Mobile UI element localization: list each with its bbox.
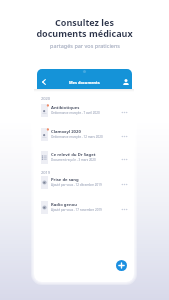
button[interactable]: Ce relevé du Dr Saget [34, 146, 134, 167]
button[interactable]: More options [120, 108, 129, 117]
button[interactable]: Back [39, 77, 49, 87]
staticText: Ordonnance envoyée - 12 mars 2020 [51, 135, 103, 139]
staticText: Clamoxyl 2020 [51, 129, 81, 135]
button[interactable]: Prise de sang [34, 171, 134, 192]
button[interactable]: More options [120, 205, 129, 214]
staticText: 2019 [41, 170, 51, 175]
staticText: Document reçu le - 3 mars 2020 [51, 158, 96, 162]
button[interactable]: Account [121, 77, 131, 87]
button[interactable]: Clamoxyl 2020 [34, 123, 134, 144]
staticText: Ordonnance envoyée - 7 avril 2020 [51, 111, 100, 115]
button[interactable]: Radio genou [34, 196, 134, 217]
staticText: 2020 [41, 96, 51, 101]
staticText: partagés par vos praticiens [50, 42, 120, 49]
button[interactable]: Add document [116, 260, 127, 271]
staticText: Mes documents [69, 80, 100, 85]
staticText: Ajouté par vous - 17 novembre 2019 [51, 208, 102, 212]
staticText: Ce relevé du Dr Saget [51, 152, 96, 158]
staticText: Antibiotiques [51, 105, 80, 111]
staticText: Consultez les documents médicaux [36, 16, 133, 40]
button[interactable]: Antibiotiques [34, 99, 134, 120]
staticText: Radio genou [51, 202, 78, 208]
button[interactable]: More options [120, 180, 129, 189]
staticText: Prise de sang [51, 177, 79, 183]
staticText: Ajouté par vous - 12 décembre 2019 [51, 183, 102, 187]
button[interactable]: More options [120, 155, 129, 164]
button[interactable]: More options [120, 132, 129, 141]
